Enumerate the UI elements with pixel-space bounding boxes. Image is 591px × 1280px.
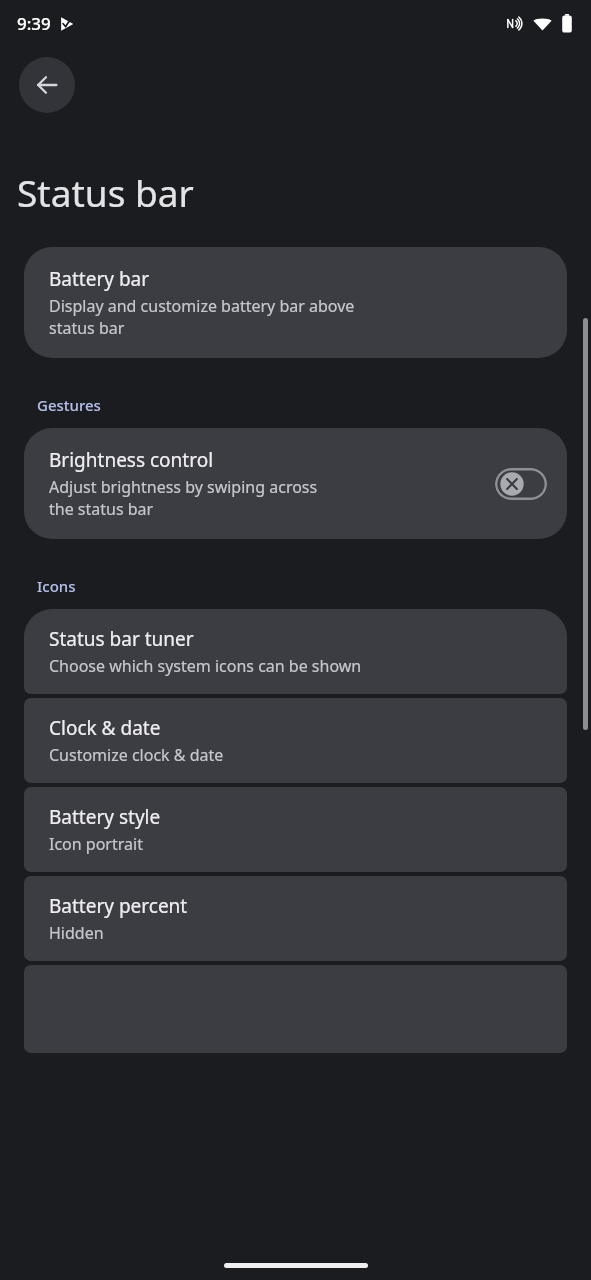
staticText: Status bar tuner [49,626,194,652]
staticText: Status bar [17,167,194,217]
staticText: Icon portrait [49,833,143,855]
staticText: Battery style [49,804,161,830]
staticText: Display and customize battery bar above … [49,295,355,339]
staticText: Customize clock & date [49,744,224,766]
staticText: Gestures [37,395,101,415]
button[interactable]: Status bar tuner [24,609,567,694]
staticText: Brightness control [49,447,214,473]
staticText: Adjust brightness by swiping across the … [49,476,318,520]
button[interactable]: Battery bar [24,247,567,358]
button[interactable]: Clock & date [24,698,567,783]
staticText: Clock & date [49,715,161,741]
staticText: Hidden [49,922,104,944]
staticText: Battery percent [49,893,188,919]
button[interactable]: Brightness control toggle, off [495,468,547,500]
button[interactable]: Battery style [24,787,567,872]
staticText: Choose which system icons can be shown [49,655,362,677]
button[interactable]: Battery percent [24,876,567,961]
staticText: 9:39 [17,12,51,35]
button[interactable]: Brightness control [24,428,567,539]
staticText: Icons [37,576,76,596]
button[interactable]: Back [19,57,75,113]
staticText: Battery bar [49,266,150,292]
